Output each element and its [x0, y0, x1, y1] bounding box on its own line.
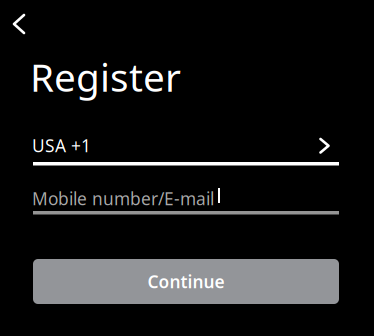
button[interactable]: Continue	[33, 259, 339, 304]
button[interactable]: USA +1	[32, 134, 338, 166]
staticText: Mobile number/E-mail	[32, 187, 214, 210]
staticText: Register	[30, 51, 181, 102]
staticText: Continue	[147, 270, 224, 293]
button[interactable]: Back	[0, 2, 41, 46]
staticText: USA +1	[32, 134, 91, 157]
